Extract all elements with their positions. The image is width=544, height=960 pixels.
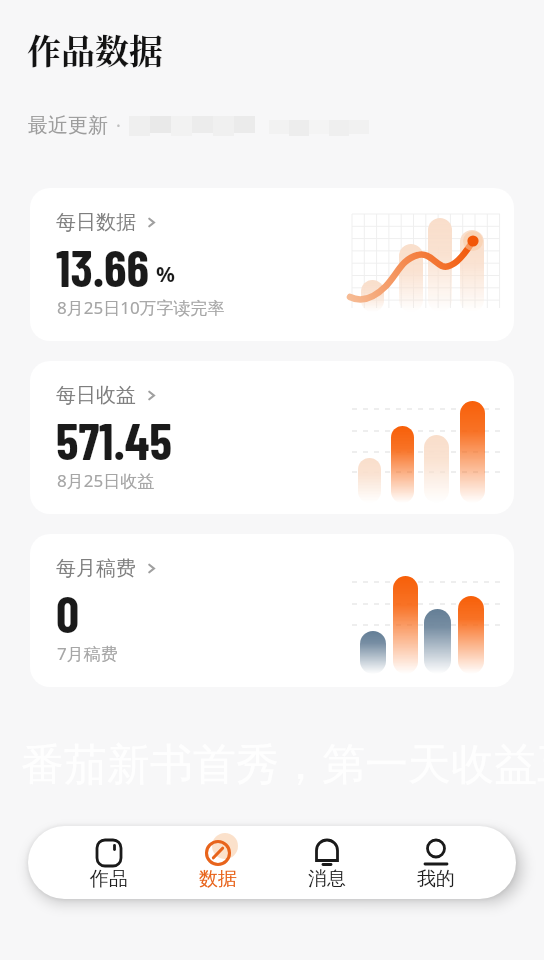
staticText: 作品	[90, 867, 128, 891]
staticText: 8月25日收益	[57, 469, 155, 492]
staticText: 8月25日10万字读完率	[57, 296, 225, 319]
staticText: 消息	[308, 867, 346, 891]
button[interactable]: 我的	[381, 834, 490, 891]
staticText: 每日数据	[56, 210, 136, 235]
button[interactable]: 每月稿费	[30, 534, 514, 687]
staticText: 每月稿费	[56, 556, 136, 581]
staticText: 数据	[199, 867, 237, 891]
button[interactable]: 数据	[163, 834, 272, 891]
staticText: 作品数据	[27, 25, 163, 74]
button[interactable]: 消息	[272, 834, 381, 891]
button[interactable]: 每日收益	[30, 361, 514, 514]
staticText: 每日收益	[56, 383, 136, 408]
staticText: 我的	[417, 867, 455, 891]
staticText: 最近更新	[28, 113, 108, 138]
staticText: 13.66	[56, 236, 149, 297]
staticText: %	[156, 260, 175, 289]
staticText: 571.45	[56, 409, 172, 470]
staticText: ·	[116, 113, 121, 138]
staticText: 7月稿费	[57, 642, 118, 665]
button[interactable]: 作品	[54, 834, 163, 891]
staticText: 0	[56, 582, 80, 643]
button[interactable]: 每日数据	[30, 188, 514, 341]
